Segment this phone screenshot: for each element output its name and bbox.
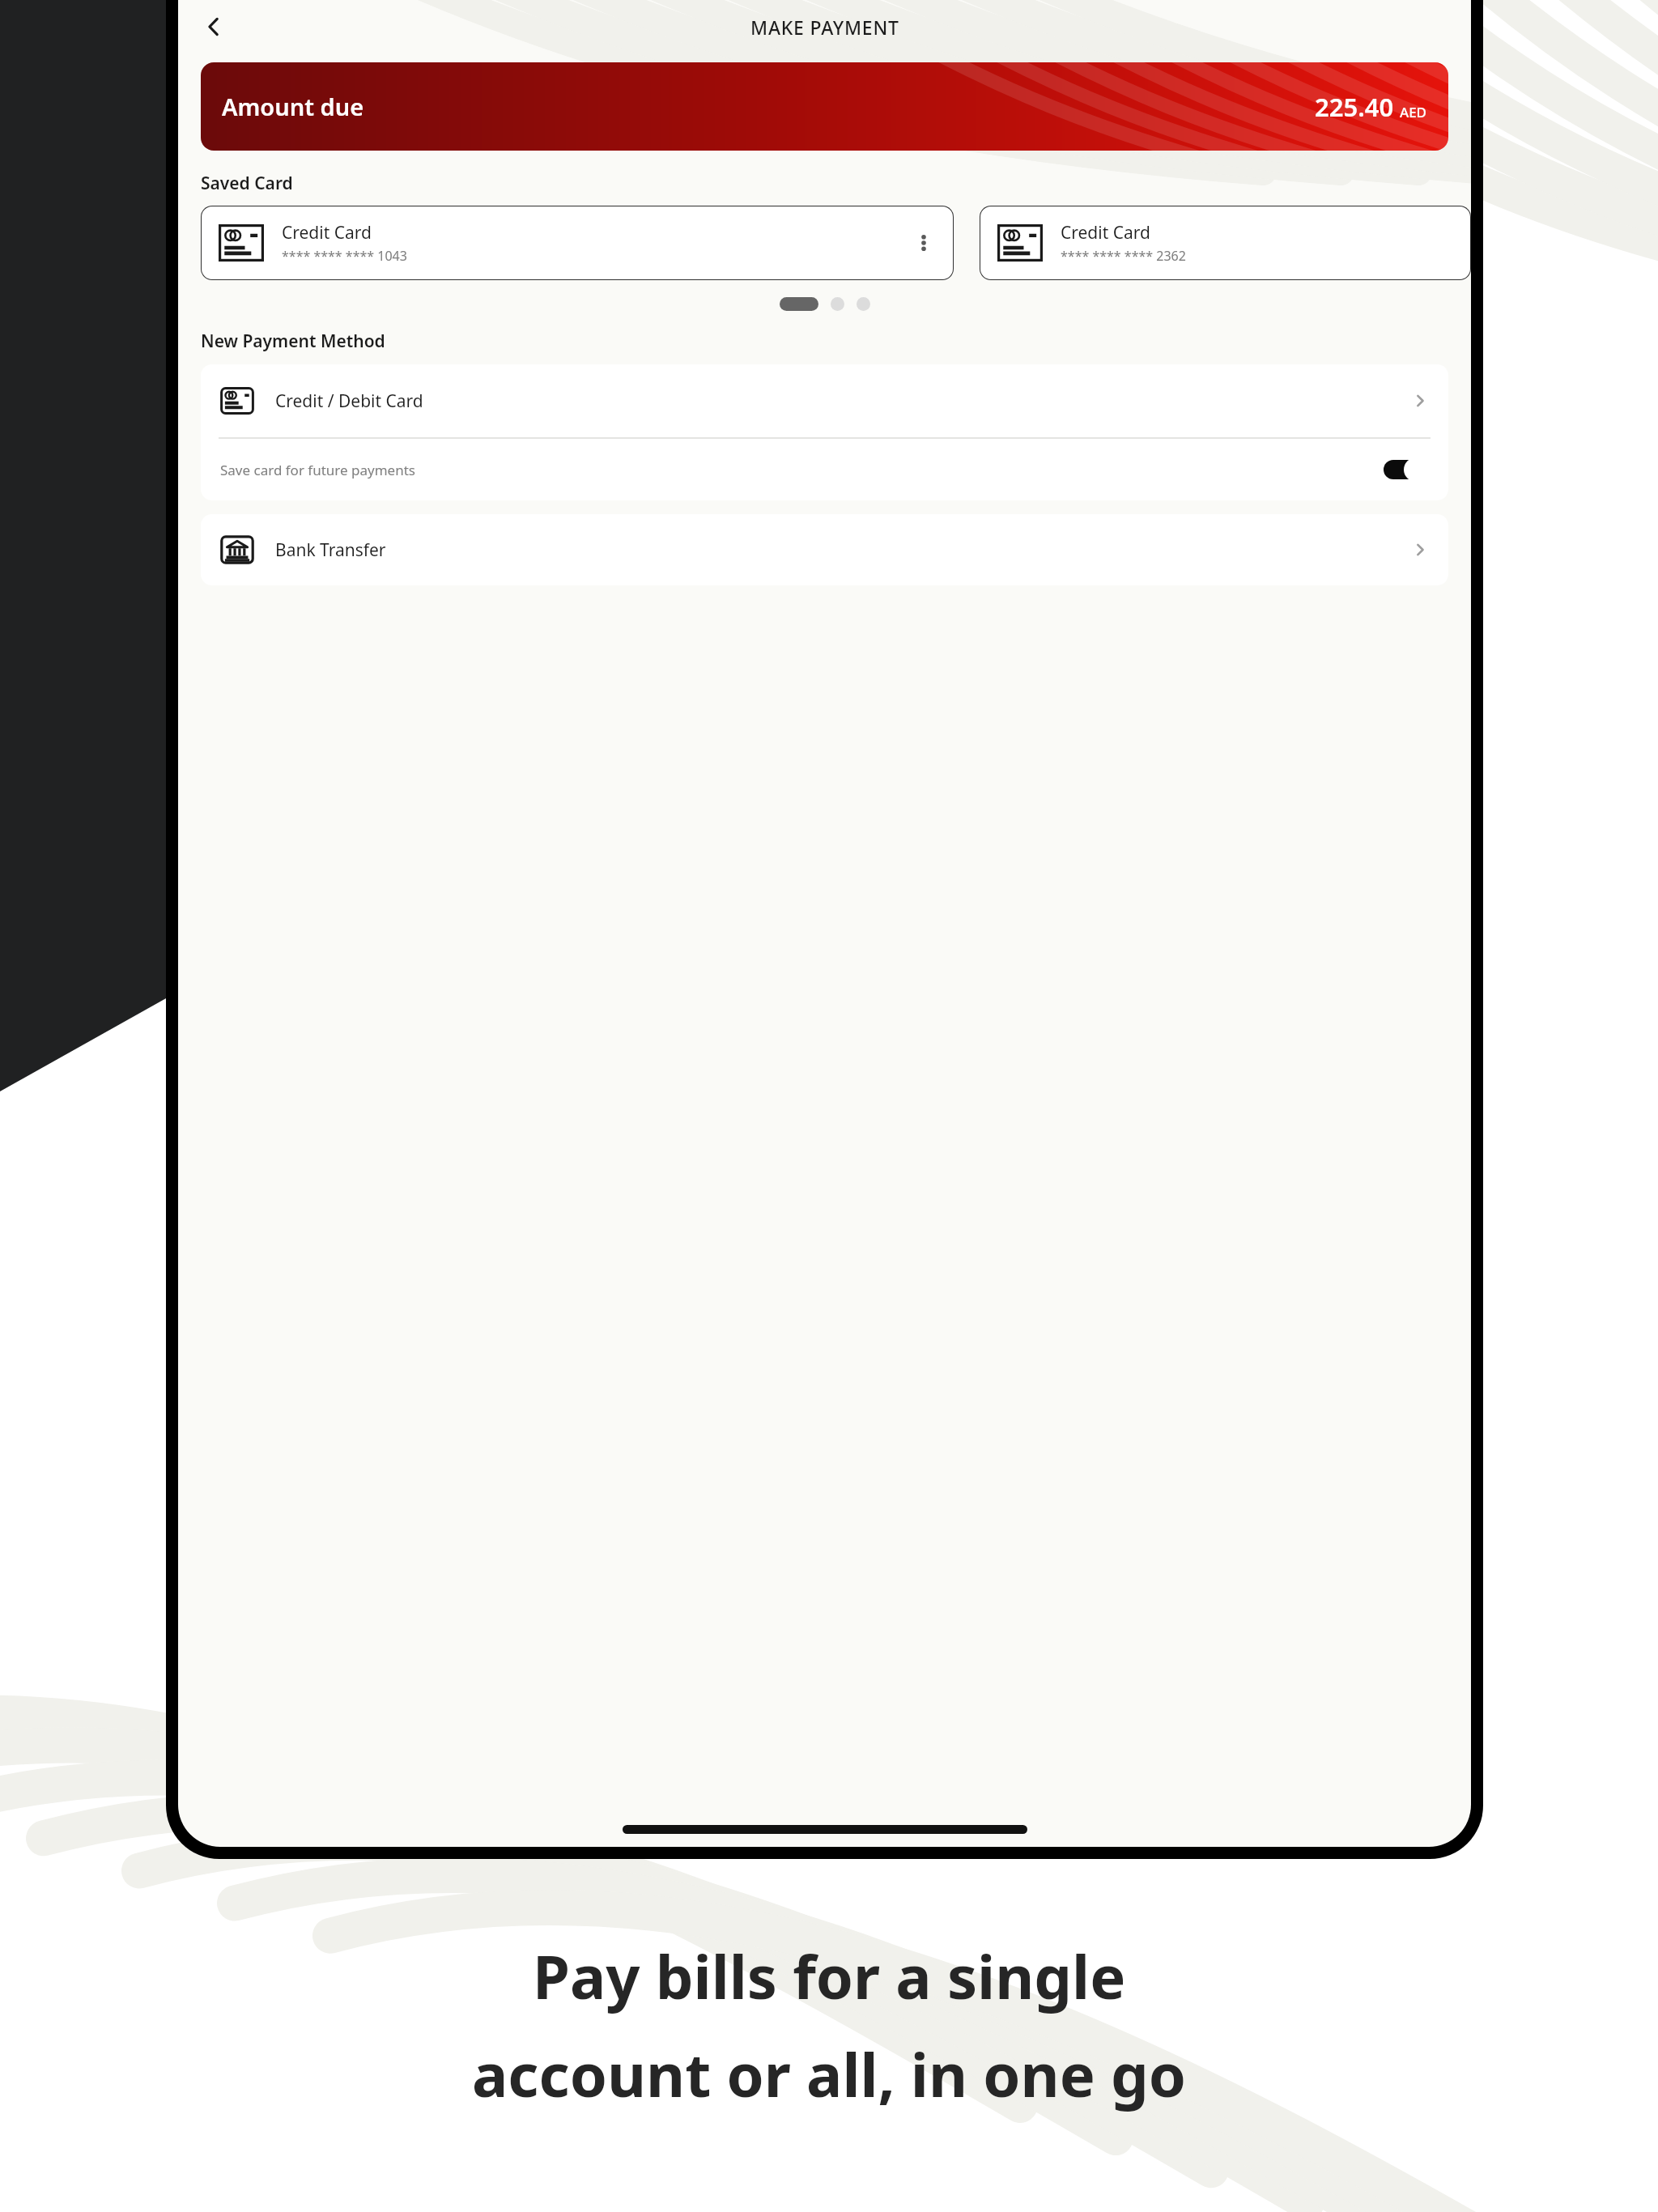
button[interactable]: Credit Card [201,206,954,280]
button[interactable]: Back [188,1,240,53]
staticText: 225.40 [1315,90,1394,124]
button[interactable]: Credit Card [980,206,1471,280]
button[interactable]: Credit / Debit Card [201,364,1448,437]
staticText: Pay bills for a single [533,1935,1126,2017]
staticText: Bank Transfer [275,538,386,562]
button[interactable]: Save card for future payments [201,439,1448,500]
staticText: **** **** **** 1043 [282,247,407,265]
button[interactable]: Bank Transfer [201,514,1448,585]
staticText: **** **** **** 2362 [1061,247,1186,265]
staticText: account or all, in one go [472,2033,1187,2115]
staticText: Credit Card [1061,221,1150,245]
staticText: Save card for future payments [220,461,415,479]
staticText: MAKE PAYMENT [750,15,899,40]
staticText: Credit / Debit Card [275,389,423,413]
staticText: Amount due [222,91,364,122]
button[interactable]: Card options [905,224,942,262]
staticText: AED [1400,103,1427,121]
button[interactable]: Amount due [201,62,1448,151]
staticText: Saved Card [201,172,293,195]
staticText: New Payment Method [201,330,385,353]
staticText: Credit Card [282,221,372,245]
